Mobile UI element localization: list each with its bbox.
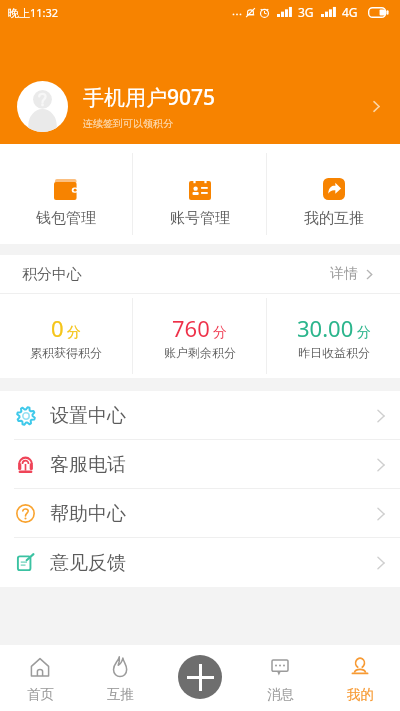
button[interactable]: Add (178, 655, 222, 699)
staticText: 760 (172, 313, 210, 343)
staticText: 账户剩余积分 (164, 345, 236, 360)
staticText: 分 (67, 324, 81, 342)
staticText: 分 (357, 324, 371, 342)
button[interactable]: 我的 (320, 645, 400, 711)
staticText: 积分中心 (22, 265, 82, 284)
staticText: 设置中心 (50, 404, 126, 428)
button[interactable]: 客服电话 (0, 440, 400, 489)
staticText: 账号管理 (170, 209, 230, 228)
staticText: 连续签到可以领积分 (83, 117, 173, 130)
staticText: 分 (213, 324, 227, 342)
staticText: 客服电话 (50, 453, 126, 477)
button[interactable]: 消息 (240, 645, 320, 711)
button[interactable]: 互推 (80, 645, 160, 711)
button[interactable]: 首页 (0, 645, 80, 711)
button[interactable]: 0 (0, 294, 132, 378)
staticText: 3G (298, 4, 314, 20)
staticText: 0 (51, 313, 64, 343)
button[interactable]: 帮助中心 (0, 489, 400, 538)
button[interactable]: 760 (133, 294, 266, 378)
staticText: 昨日收益积分 (298, 345, 370, 360)
button[interactable]: 我的互推 (267, 144, 400, 244)
button[interactable]: 手机用户9075 (0, 69, 400, 144)
button[interactable]: 意见反馈 (0, 538, 400, 587)
staticText: 4G (342, 4, 358, 20)
staticText: 累积获得积分 (30, 345, 102, 360)
staticText: 30.00 (297, 313, 354, 343)
staticText: 晚上11:32 (8, 5, 59, 20)
staticText: 互推 (107, 686, 134, 703)
staticText: 消息 (267, 686, 294, 703)
staticText: 详情 (330, 265, 358, 283)
button[interactable]: 账号管理 (133, 144, 266, 244)
staticText: 意见反馈 (50, 551, 126, 575)
staticText: 首页 (27, 686, 54, 703)
staticText: 钱包管理 (36, 209, 96, 228)
staticText: 帮助中心 (50, 502, 126, 526)
staticText: 我的 (347, 686, 374, 703)
button[interactable]: 积分中心 (0, 255, 400, 293)
button[interactable]: 设置中心 (0, 391, 400, 440)
button[interactable]: 30.00 (267, 294, 400, 378)
staticText: 我的互推 (304, 209, 364, 228)
staticText: 手机用户9075 (83, 83, 216, 112)
button[interactable]: 钱包管理 (0, 144, 132, 244)
